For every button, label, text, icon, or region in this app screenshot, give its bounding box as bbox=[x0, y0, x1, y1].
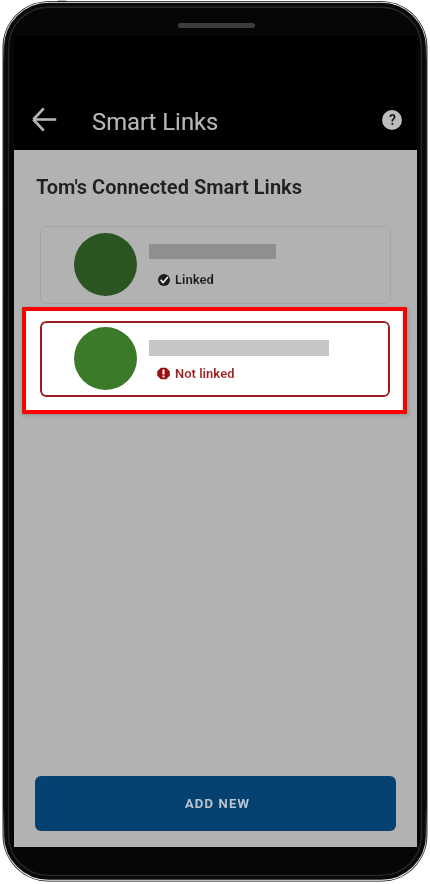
button[interactable]: Help bbox=[374, 102, 410, 138]
staticText: ADD NEW bbox=[185, 796, 251, 811]
staticText: Tom's Connected Smart Links bbox=[36, 175, 303, 198]
button[interactable]: Not linked bbox=[40, 321, 390, 397]
staticText: Not linked bbox=[175, 366, 235, 381]
staticText: Smart Links bbox=[92, 108, 219, 136]
staticText: Linked bbox=[175, 272, 214, 287]
button[interactable]: Navigate back bbox=[22, 97, 66, 141]
button[interactable]: ADD NEW bbox=[35, 776, 396, 831]
staticText: ? bbox=[389, 112, 396, 128]
button[interactable]: Linked bbox=[40, 226, 391, 304]
